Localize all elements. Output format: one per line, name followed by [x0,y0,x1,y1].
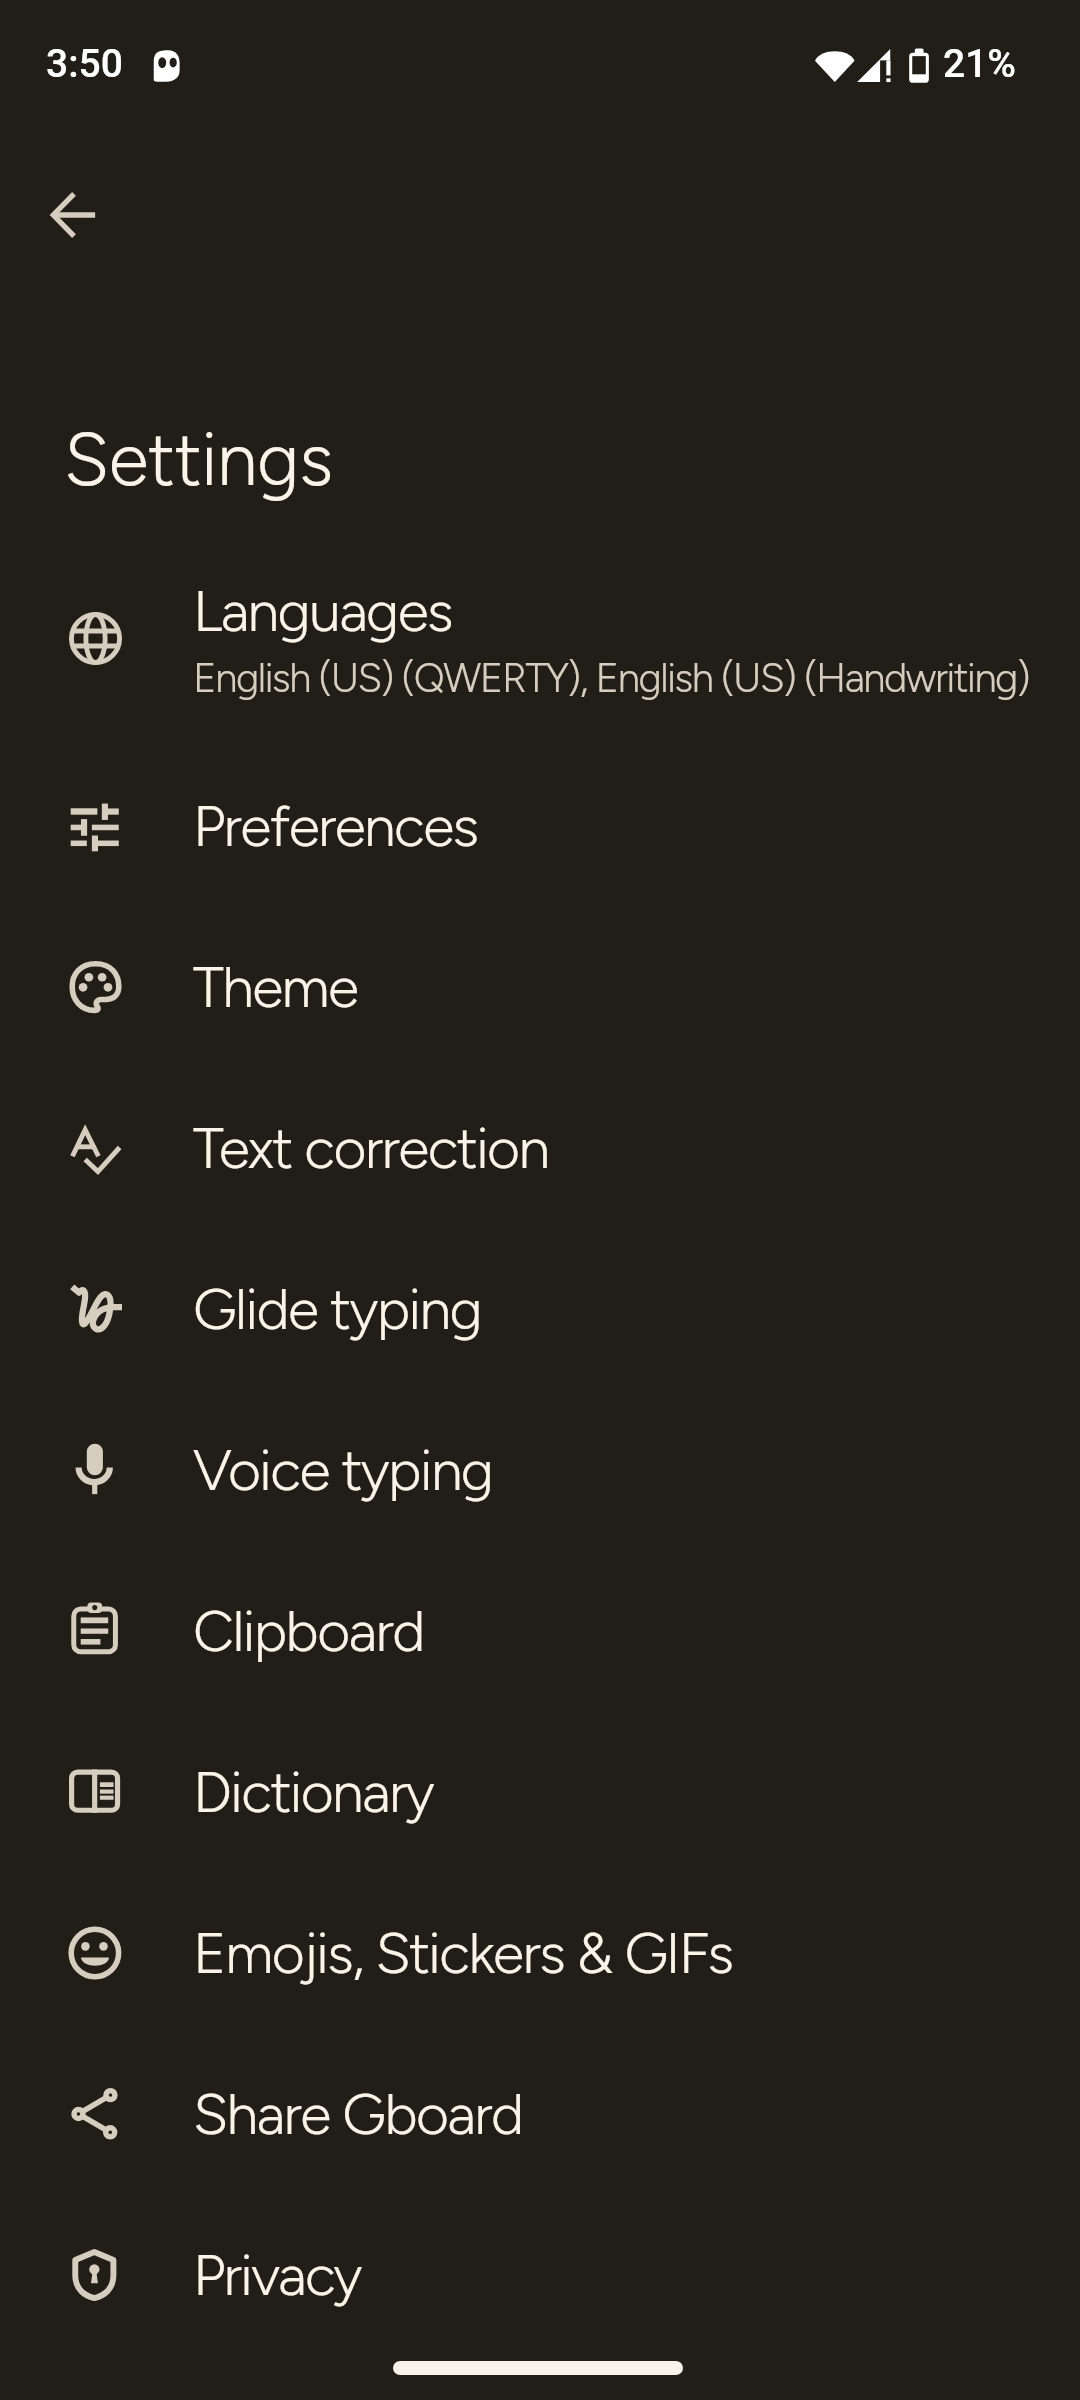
staticText: 21% [943,41,1016,87]
button[interactable]: Languages [0,531,1080,745]
button[interactable]: Privacy [0,2194,1080,2355]
staticText: Privacy [193,2241,361,2309]
staticText: 3:50 [46,41,123,87]
button[interactable]: Preferences [0,745,1080,906]
staticText: Share Gboard [193,2080,523,2148]
staticText: Voice typing [193,1436,493,1504]
staticText: Theme [193,953,358,1021]
staticText: Emojis, Stickers & GIFs [193,1919,733,1987]
staticText: Dictionary [193,1758,434,1826]
button[interactable]: Navigate up [26,167,122,263]
staticText: Glide typing [193,1275,482,1343]
staticText: Text correction [193,1114,549,1182]
button[interactable]: Share Gboard [0,2033,1080,2194]
staticText: Languages [193,577,452,645]
button[interactable]: Clipboard [0,1550,1080,1711]
staticText: Settings [64,416,334,504]
button[interactable]: Glide typing [0,1228,1080,1389]
staticText: Preferences [193,792,478,860]
button[interactable]: Voice typing [0,1389,1080,1550]
staticText: Clipboard [193,1597,424,1665]
button[interactable]: Dictionary [0,1711,1080,1872]
button[interactable]: Text correction [0,1067,1080,1228]
button[interactable]: Emojis, Stickers & GIFs [0,1872,1080,2033]
staticText: English (US) (QWERTY), English (US) (Han… [193,654,1030,702]
button[interactable]: Theme [0,906,1080,1067]
